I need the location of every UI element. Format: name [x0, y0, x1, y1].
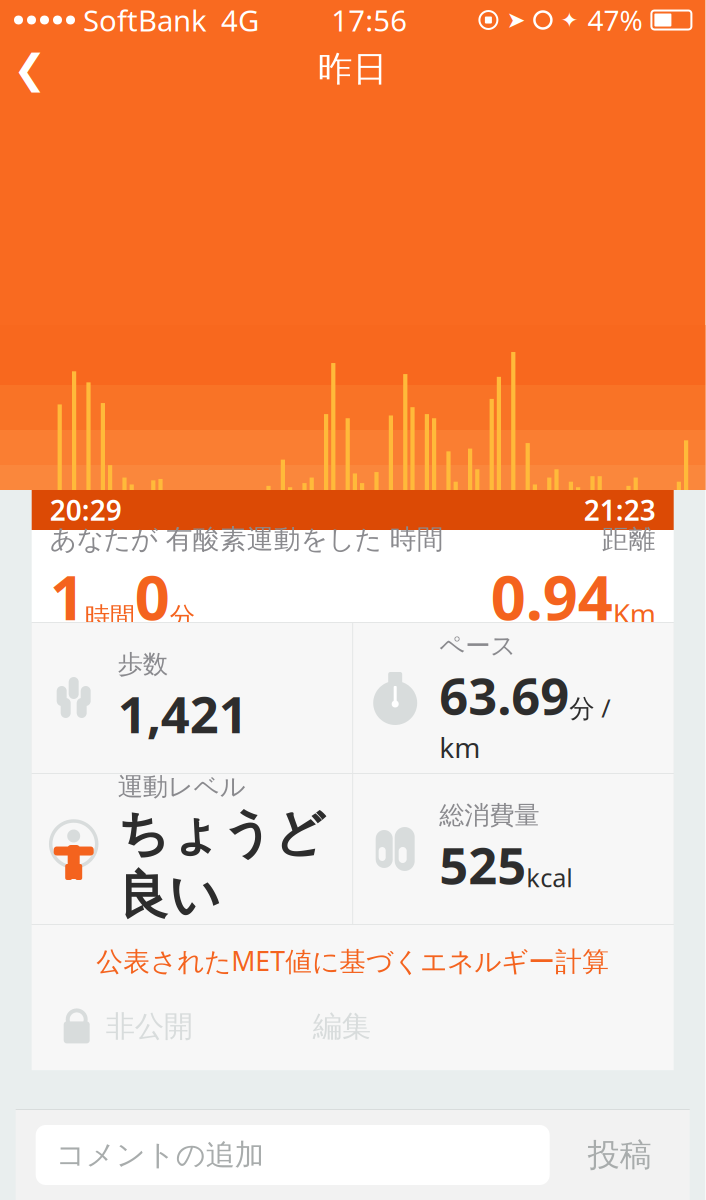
staticText: SoftBank — [83, 0, 207, 39]
staticText: 1 — [50, 556, 85, 637]
staticText: 昨日 — [318, 48, 388, 90]
staticText: km — [439, 729, 480, 766]
staticText: 分 — [170, 601, 195, 632]
staticText: 投稿 — [588, 1135, 652, 1175]
staticText: 17:56 — [331, 0, 407, 39]
staticText: Km — [613, 595, 656, 632]
staticText: ❮ — [13, 46, 47, 92]
staticText: 4G — [221, 0, 259, 39]
staticText: ちょうど良い — [118, 802, 326, 927]
staticText: ペース — [439, 630, 516, 661]
staticText: ➤ — [506, 7, 525, 33]
staticText: コメントの追加 — [56, 1137, 264, 1173]
button[interactable]: コメントの追加 — [36, 1125, 550, 1185]
staticText: 非公開 — [106, 1008, 193, 1044]
staticText: kcal — [526, 861, 573, 894]
staticText: 1,421 — [118, 680, 248, 747]
staticText: 0 — [135, 556, 170, 637]
staticText: 0.94 — [491, 556, 613, 637]
staticText: あなたが 有酸素運動をした 時間 — [50, 523, 444, 556]
staticText: ✦ — [560, 8, 578, 32]
staticText: 総消費量 — [439, 800, 539, 831]
staticText: 525 — [439, 831, 526, 898]
staticText: 編集 — [313, 1008, 371, 1044]
staticText: 距離 — [602, 523, 656, 556]
button[interactable]: 編集 — [313, 996, 371, 1056]
staticText: 運動レベル — [118, 771, 246, 802]
staticText: 47% — [587, 1, 642, 39]
staticText: 時間 — [85, 601, 135, 632]
staticText: 公表されたMET値に基づくエネルギー計算 — [96, 943, 609, 978]
staticText: 20:29 — [50, 491, 122, 529]
button[interactable]: Back — [0, 40, 60, 98]
button[interactable]: 公表されたMET値に基づくエネルギー計算 — [32, 925, 674, 996]
staticText: 歩数 — [118, 649, 168, 680]
staticText: 分 / — [569, 691, 610, 725]
button[interactable]: 非公開 — [32, 996, 193, 1056]
staticText: 21:23 — [584, 491, 656, 529]
button[interactable]: 投稿 — [550, 1125, 690, 1185]
staticText: 63.69 — [439, 661, 569, 729]
